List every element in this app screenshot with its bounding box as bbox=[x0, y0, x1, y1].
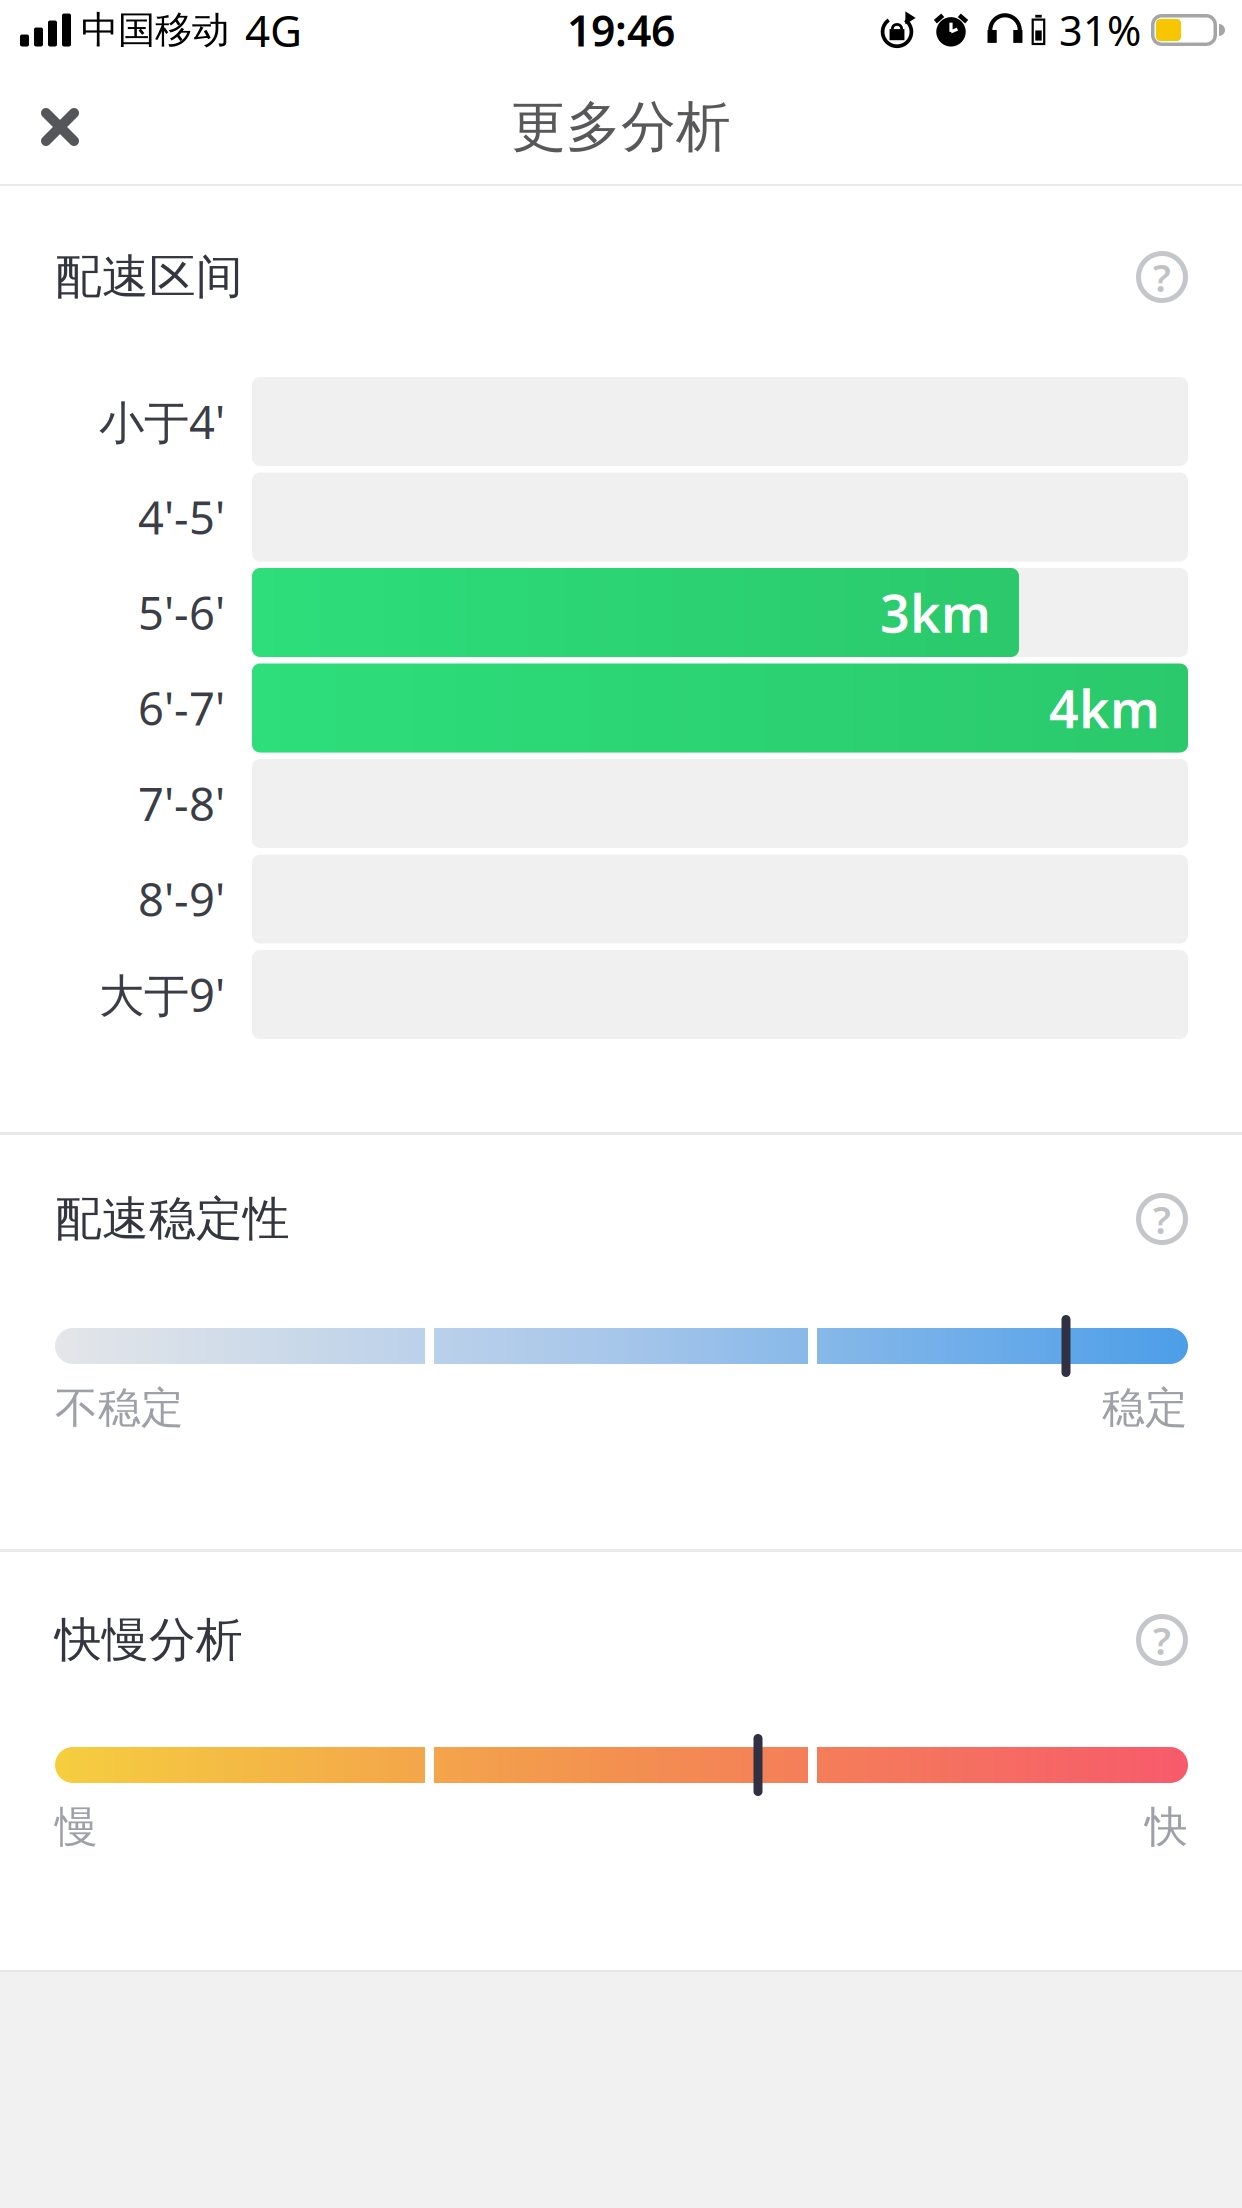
staticText: 4'-5' bbox=[138, 487, 225, 547]
staticText: 8'-9' bbox=[138, 869, 225, 929]
button[interactable]: 关闭 bbox=[0, 65, 80, 189]
staticText: 中国移动 bbox=[81, 7, 229, 53]
staticText: 配速区间 bbox=[55, 248, 243, 306]
staticText: 5'-6' bbox=[138, 582, 225, 643]
staticText: 31% bbox=[1059, 3, 1141, 57]
staticText: 6'-7' bbox=[138, 678, 225, 738]
staticText: 4G bbox=[245, 1, 302, 59]
staticText: ? bbox=[1153, 251, 1171, 303]
staticText: 19:46 bbox=[567, 2, 675, 58]
button[interactable]: 配速区间说明 bbox=[1136, 251, 1188, 303]
staticText: 大于9' bbox=[99, 964, 225, 1025]
staticText: 不稳定 bbox=[55, 1382, 184, 1434]
staticText: 4km bbox=[1049, 673, 1160, 743]
staticText: 更多分析 bbox=[511, 93, 731, 160]
staticText: 快 bbox=[1145, 1801, 1188, 1853]
button[interactable]: 配速稳定性说明 bbox=[1136, 1193, 1188, 1245]
staticText: 配速稳定性 bbox=[55, 1190, 290, 1248]
staticText: ? bbox=[1153, 1614, 1171, 1666]
staticText: 慢 bbox=[55, 1801, 98, 1853]
staticText: 7'-8' bbox=[138, 773, 225, 834]
staticText: ? bbox=[1153, 1193, 1171, 1245]
staticText: 快慢分析 bbox=[55, 1611, 243, 1669]
button[interactable]: 快慢分析说明 bbox=[1136, 1614, 1188, 1666]
staticText: 3km bbox=[880, 578, 991, 647]
staticText: 稳定 bbox=[1102, 1382, 1188, 1434]
staticText: 小于4' bbox=[99, 391, 225, 452]
